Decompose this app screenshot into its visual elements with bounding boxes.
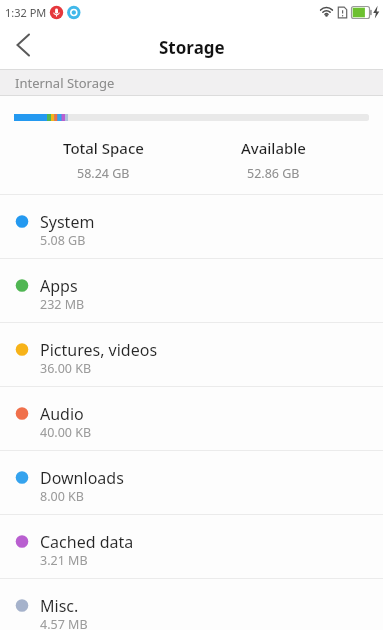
button[interactable] (0, 25, 48, 69)
staticText: System (40, 211, 95, 233)
staticText: Total Space (63, 138, 144, 158)
staticText: Internal Storage (15, 74, 115, 92)
staticText: 36.00 KB (40, 360, 92, 377)
button[interactable]: Apps (0, 258, 383, 322)
staticText: Downloads (40, 467, 124, 489)
staticText: Storage (159, 36, 225, 59)
button[interactable]: Cached data (0, 514, 383, 578)
staticText: 40.00 KB (40, 424, 92, 441)
staticText: Pictures, videos (40, 339, 158, 361)
staticText: Available (241, 138, 306, 158)
staticText: 8.00 KB (40, 488, 84, 505)
staticText: Cached data (40, 531, 134, 553)
staticText: Misc. (40, 595, 79, 617)
button[interactable]: Audio (0, 386, 383, 450)
staticText: 52.86 GB (247, 165, 300, 182)
staticText: 58.24 GB (77, 165, 130, 182)
staticText: 4.57 MB (40, 616, 88, 630)
staticText: 1:32 PM (5, 5, 47, 20)
staticText: 232 MB (40, 296, 85, 313)
button[interactable]: Pictures, videos (0, 322, 383, 386)
button[interactable]: Downloads (0, 450, 383, 514)
staticText: 5.08 GB (40, 232, 86, 249)
staticText: Apps (40, 275, 78, 297)
button[interactable]: System (0, 194, 383, 258)
button[interactable]: Misc. (0, 578, 383, 630)
staticText: 3.21 MB (40, 552, 88, 569)
staticText: Audio (40, 403, 84, 425)
